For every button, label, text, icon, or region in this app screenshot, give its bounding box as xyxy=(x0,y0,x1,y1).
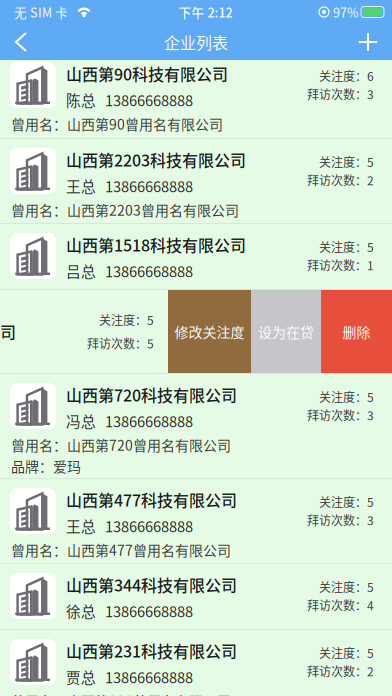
staticText: 拜访次数：1 xyxy=(307,256,374,274)
staticText: 吕总 xyxy=(66,260,96,281)
staticText: 关注度：5 xyxy=(99,311,154,328)
staticText: 删除 xyxy=(342,321,370,342)
button[interactable]: 添加 xyxy=(348,24,392,60)
staticText: 关注度：5 xyxy=(319,153,374,170)
staticText: 拜访次数：3 xyxy=(307,85,374,103)
staticText: 13866668888 xyxy=(105,175,193,196)
staticText: 品牌：爱玛 xyxy=(11,456,81,476)
staticText: 拜访次数：2 xyxy=(307,171,374,189)
button[interactable]: 山西第477科技有限公司 xyxy=(0,479,392,563)
staticText: 冯总 xyxy=(66,410,96,431)
staticText: 山西第2203科技有限公司 xyxy=(66,148,246,171)
button[interactable]: 山西第2203科技有限公司 xyxy=(0,139,392,223)
staticText: 13866668888 xyxy=(105,515,193,536)
staticText: 13866668888 xyxy=(105,410,193,431)
staticText: 13866668888 xyxy=(105,260,193,281)
staticText: 拜访次数：5 xyxy=(87,334,154,352)
staticText: 徐总 xyxy=(66,600,96,621)
staticText: 山西第231科技有限公司 xyxy=(66,639,237,662)
button[interactable]: 山西第344科技有限公司 xyxy=(0,564,392,629)
staticText: 关注度：5 xyxy=(319,238,374,255)
staticText: 曾用名：山西第90曾用名有限公司 xyxy=(11,113,223,134)
staticText: 山西第90科技有限公司 xyxy=(66,62,228,85)
staticText: 王总 xyxy=(66,515,96,536)
staticText: 曾用名：山西第2203曾用名有限公司 xyxy=(11,199,239,220)
staticText: 曾用名：山西第231曾用名有限公司 xyxy=(11,690,231,696)
staticText: 13866668888 xyxy=(105,600,193,621)
staticText: 关注度：5 xyxy=(319,388,374,405)
staticText: 设为在贷 xyxy=(258,321,314,342)
button[interactable]: 山西第90科技有限公司 xyxy=(0,60,392,138)
staticText: 山西第344科技有限公司 xyxy=(66,573,237,596)
staticText: 修改关注度 xyxy=(174,321,244,342)
staticText: 拜访次数：3 xyxy=(307,406,374,424)
staticText: 山西第1518科技有限公司 xyxy=(66,233,246,256)
staticText: 97% xyxy=(330,3,359,21)
staticText: 关注度：5 xyxy=(319,578,374,595)
button[interactable]: 山西第720科技有限公司 xyxy=(0,374,392,478)
staticText: 陈总 xyxy=(66,89,96,110)
staticText: 山西第477科技有限公司 xyxy=(66,488,237,511)
staticText: 关注度：5 xyxy=(319,644,374,661)
staticText: 无 SIM 卡 xyxy=(14,3,68,21)
button[interactable]: 设为在贷 xyxy=(251,290,321,373)
staticText: 13866668888 xyxy=(105,89,193,110)
staticText: 关注度：5 xyxy=(319,493,374,510)
staticText: 王总 xyxy=(66,175,96,196)
button[interactable]: 山西第1518科技有限公司 xyxy=(0,224,392,289)
staticText: 司 xyxy=(0,320,16,343)
staticText: 山西第720科技有限公司 xyxy=(66,383,237,406)
staticText: 13866668888 xyxy=(105,666,193,687)
staticText: 拜访次数：4 xyxy=(307,596,374,614)
button[interactable]: 山西第231科技有限公司 xyxy=(0,630,392,696)
staticText: 关注度：6 xyxy=(319,67,374,84)
staticText: 曾用名：山西第477曾用名有限公司 xyxy=(11,539,231,560)
staticText: 拜访次数：2 xyxy=(307,662,374,680)
button[interactable]: 返回 xyxy=(0,24,40,60)
staticText: 曾用名：山西第720曾用名有限公司 xyxy=(11,434,231,455)
staticText: 贾总 xyxy=(66,666,96,687)
button[interactable]: 修改关注度 xyxy=(168,290,251,373)
staticText: 拜访次数：3 xyxy=(307,511,374,529)
button[interactable]: 删除 xyxy=(321,290,392,373)
staticText: 下午 2:12 xyxy=(178,3,232,21)
staticText: 企业列表 xyxy=(164,30,228,54)
